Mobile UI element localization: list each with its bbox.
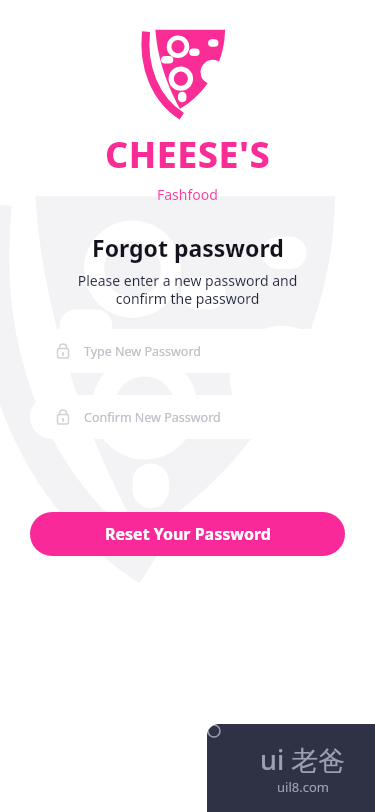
staticText: uil8.com xyxy=(277,778,329,796)
staticText: Type New Password xyxy=(84,343,201,360)
button[interactable]: Type New Password xyxy=(30,329,345,373)
button[interactable]: Confirm New Password xyxy=(30,395,345,439)
staticText: Forgot password xyxy=(92,232,284,263)
staticText: Reset Your Password xyxy=(105,523,271,545)
staticText: CHEESE'S xyxy=(105,130,271,179)
staticText: Fashfood xyxy=(157,185,218,204)
button[interactable]: Reset Your Password xyxy=(30,512,345,556)
staticText: Confirm New Password xyxy=(84,409,221,426)
other: Cheese's pizza logo xyxy=(129,26,247,120)
staticText: ui 老爸 xyxy=(260,741,346,778)
staticText: Please enter a new password and confirm … xyxy=(28,271,347,308)
